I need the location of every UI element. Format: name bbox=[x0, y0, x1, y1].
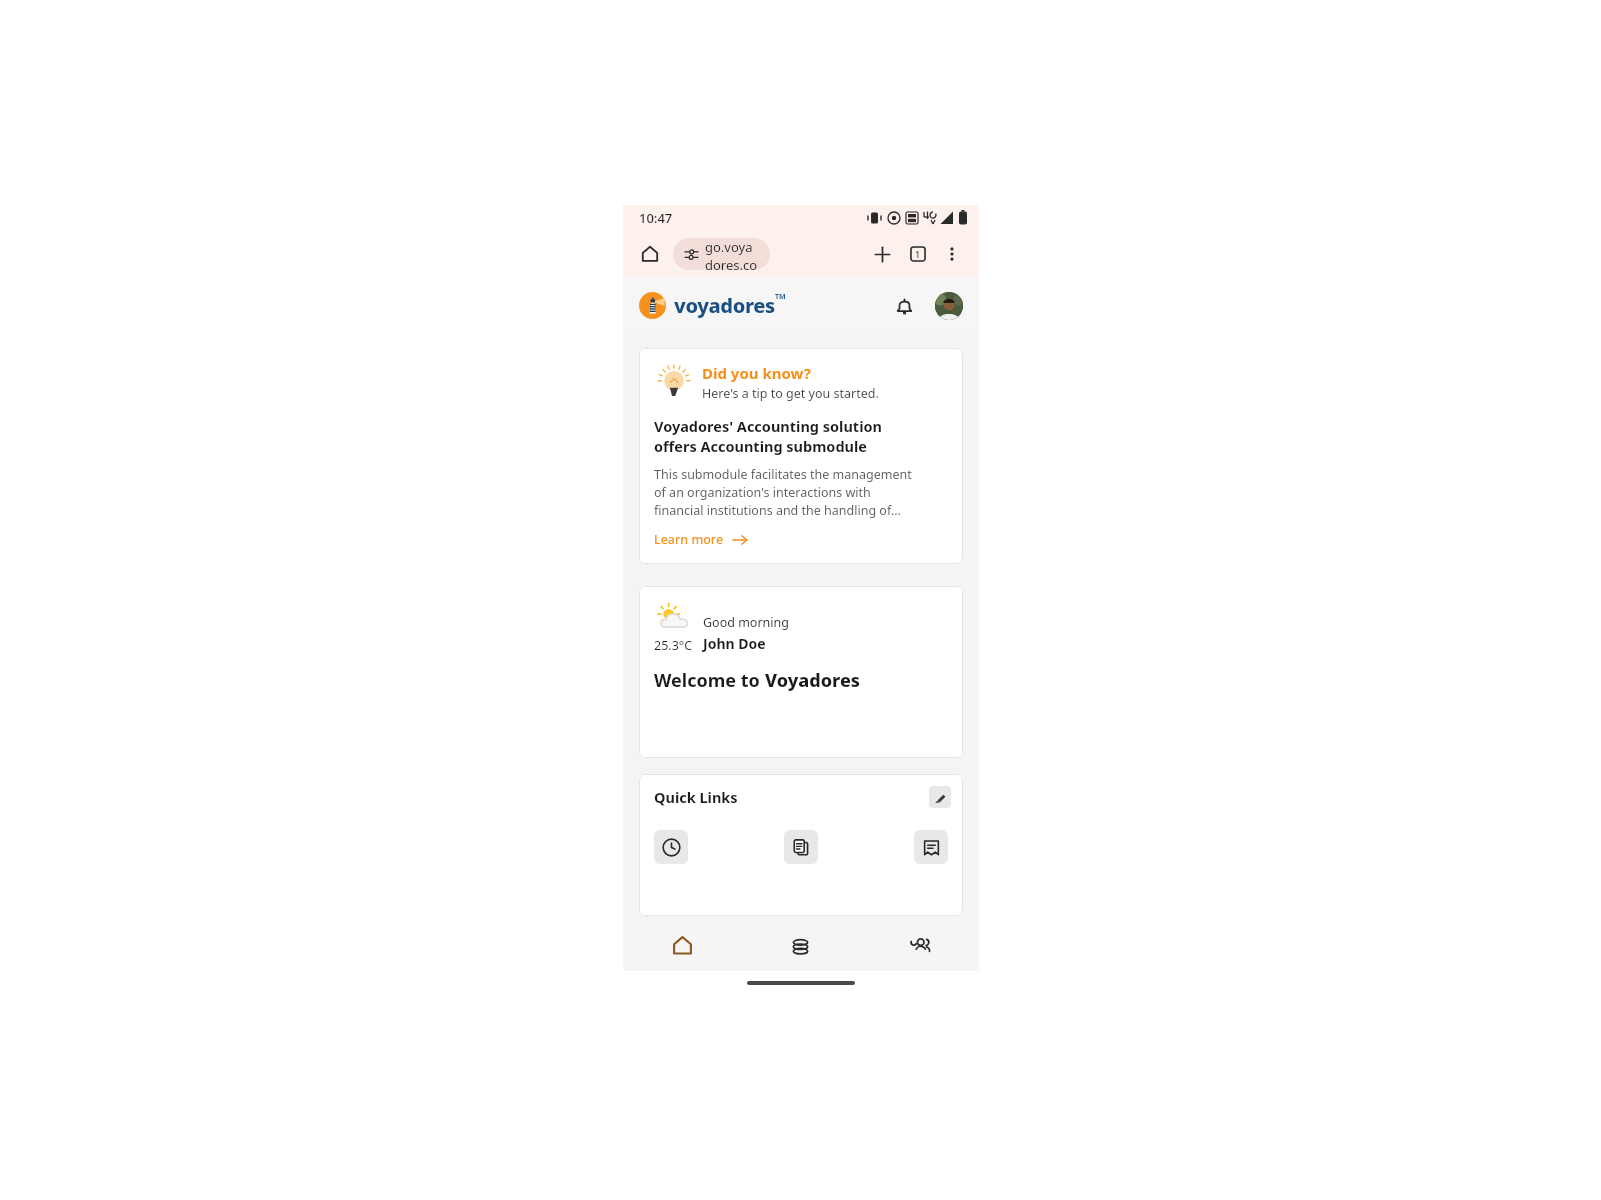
staticText: Did you know? bbox=[702, 363, 811, 383]
staticText: Welcome to bbox=[654, 668, 765, 693]
staticText: Quick Links bbox=[654, 787, 738, 807]
button[interactable]: Edit quick links bbox=[929, 786, 951, 808]
button[interactable]: Quick link bbox=[914, 830, 948, 864]
staticText: Learn more bbox=[654, 531, 724, 548]
button[interactable]: Profile bbox=[935, 292, 963, 320]
staticText: John Doe bbox=[703, 634, 766, 653]
button[interactable]: More options bbox=[937, 239, 967, 269]
button[interactable]: Finance bbox=[741, 919, 860, 971]
button[interactable]: Home bbox=[623, 919, 741, 971]
staticText: 25.3°C bbox=[654, 637, 693, 654]
staticText: Voyadores bbox=[765, 668, 861, 693]
button[interactable]: Notifications bbox=[887, 289, 921, 323]
staticText: This submodule facilitates the managemen… bbox=[654, 466, 912, 519]
button[interactable]: Quick link bbox=[654, 830, 688, 864]
button[interactable]: Learn more bbox=[654, 531, 748, 548]
button[interactable]: Quick link bbox=[784, 830, 818, 864]
staticText: Voyadores' Accounting solution offers Ac… bbox=[654, 416, 882, 456]
button[interactable]: People bbox=[860, 919, 979, 971]
button[interactable]: go.voyadores.com bbox=[673, 238, 770, 270]
button[interactable]: Tabs bbox=[903, 239, 933, 269]
staticText: go.voyadores.com bbox=[705, 238, 758, 270]
staticText: 1 bbox=[915, 248, 921, 260]
button[interactable]: Home bbox=[635, 239, 665, 269]
button[interactable]: Voyadores home bbox=[639, 292, 786, 319]
staticText: 10:47 bbox=[639, 209, 673, 227]
staticText: Good morning bbox=[703, 614, 789, 631]
staticText: voyadores bbox=[674, 292, 775, 319]
staticText: TM bbox=[775, 292, 786, 302]
staticText: Here's a tip to get you started. bbox=[702, 385, 879, 402]
button[interactable]: New tab bbox=[867, 239, 897, 269]
